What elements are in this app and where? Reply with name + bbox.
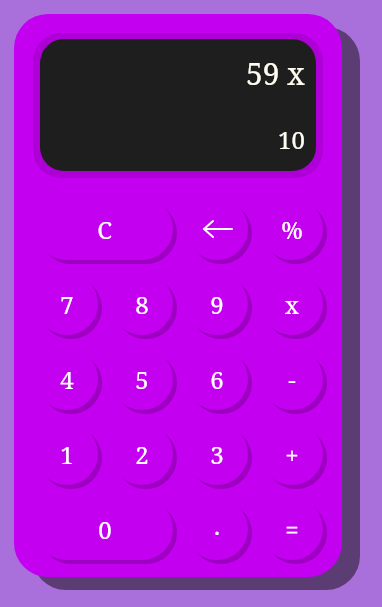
- button[interactable]: =: [261, 498, 323, 560]
- staticText: 0: [98, 513, 112, 546]
- staticText: 8: [135, 288, 149, 321]
- staticText: C: [97, 213, 112, 246]
- button[interactable]: x: [261, 273, 323, 335]
- button[interactable]: 0: [36, 498, 173, 560]
- staticText: +: [285, 438, 299, 471]
- button[interactable]: 8: [111, 273, 173, 335]
- button[interactable]: 2: [111, 423, 173, 485]
- staticText: .: [214, 509, 220, 542]
- button[interactable]: .: [186, 498, 248, 560]
- button[interactable]: 9: [186, 273, 248, 335]
- staticText: 9: [210, 288, 224, 321]
- button[interactable]: 3: [186, 423, 248, 485]
- button[interactable]: %: [261, 198, 323, 260]
- staticText: -: [288, 363, 296, 396]
- staticText: =: [285, 513, 299, 546]
- button[interactable]: 5: [111, 348, 173, 410]
- staticText: 3: [210, 438, 224, 471]
- staticText: 6: [210, 363, 224, 396]
- staticText: 7: [60, 288, 74, 321]
- button[interactable]: 7: [36, 273, 98, 335]
- button[interactable]: C: [36, 198, 173, 260]
- button[interactable]: 6: [186, 348, 248, 410]
- button[interactable]: -: [261, 348, 323, 410]
- staticText: 5: [135, 363, 149, 396]
- staticText: 10: [278, 123, 305, 156]
- staticText: 59 x: [246, 53, 305, 94]
- button[interactable]: +: [261, 423, 323, 485]
- staticText: x: [285, 288, 299, 321]
- staticText: %: [281, 213, 303, 246]
- button[interactable]: 4: [36, 348, 98, 410]
- button[interactable]: 1: [36, 423, 98, 485]
- button[interactable]: Backspace: [186, 198, 248, 260]
- staticText: 1: [60, 438, 74, 471]
- staticText: 2: [135, 438, 149, 471]
- staticText: 4: [60, 363, 74, 396]
